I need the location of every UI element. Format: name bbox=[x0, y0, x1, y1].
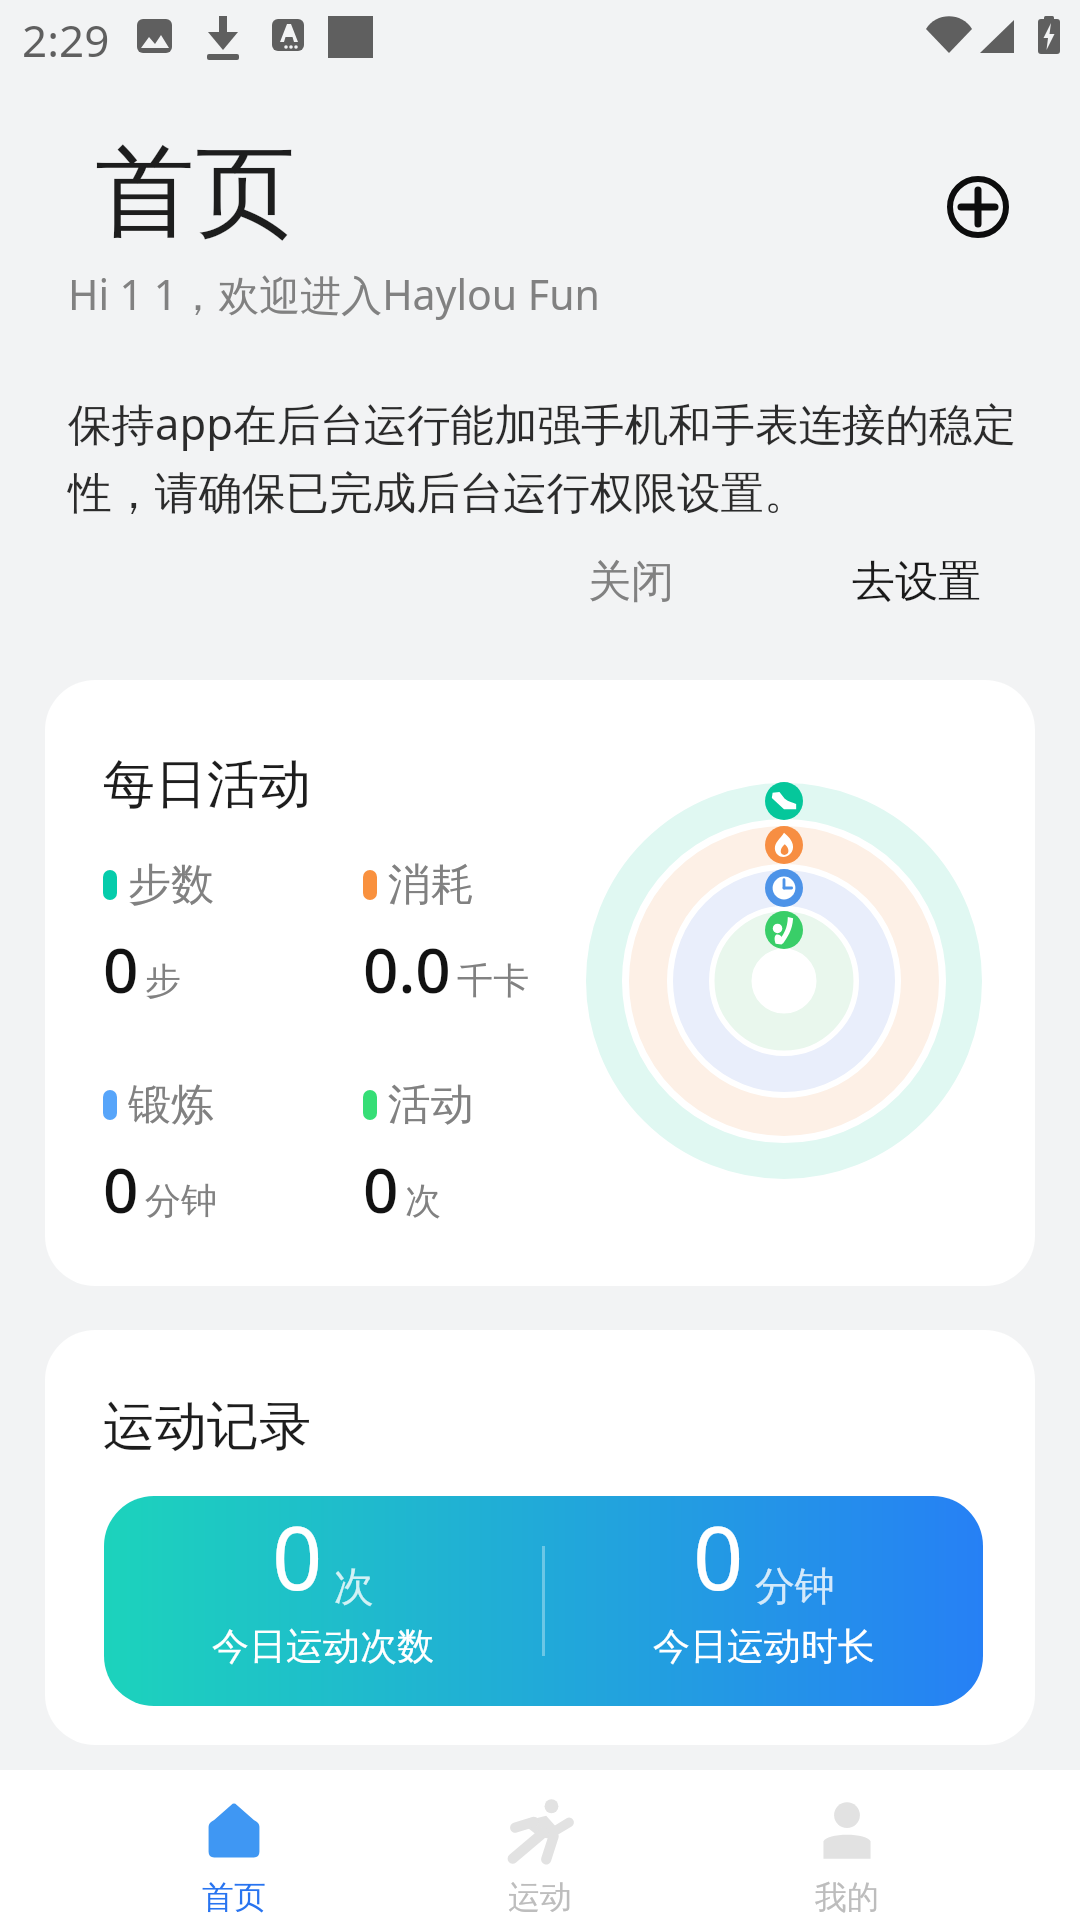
button[interactable]: Add device bbox=[940, 169, 1016, 245]
staticText: 我的 bbox=[815, 1877, 879, 1917]
staticText: 首页 bbox=[95, 130, 295, 256]
staticText: 运动记录 bbox=[103, 1394, 311, 1460]
staticText: 运动 bbox=[508, 1877, 572, 1917]
button[interactable]: 去设置 bbox=[838, 545, 995, 619]
staticText: 0.0 bbox=[363, 927, 451, 1011]
staticText: 活动 bbox=[388, 1078, 474, 1132]
staticText: 首页 bbox=[202, 1877, 266, 1917]
staticText: 分钟 bbox=[145, 1178, 217, 1223]
staticText: 次 bbox=[334, 1561, 374, 1611]
staticText: 0 bbox=[103, 1147, 139, 1231]
staticText: 去设置 bbox=[852, 555, 981, 609]
button[interactable]: 运动 bbox=[450, 1770, 630, 1920]
staticText: 0 bbox=[103, 927, 139, 1011]
staticText: 0 bbox=[363, 1147, 399, 1231]
staticText: 0 bbox=[272, 1496, 323, 1616]
staticText: 每日活动 bbox=[103, 752, 311, 818]
staticText: 步数 bbox=[128, 858, 214, 912]
staticText: 关闭 bbox=[588, 555, 674, 609]
staticText: 今日运动时长 bbox=[653, 1623, 875, 1670]
button[interactable]: 我的 bbox=[757, 1770, 937, 1920]
staticText: 步 bbox=[145, 958, 181, 1003]
staticText: 消耗 bbox=[388, 858, 474, 912]
staticText: 2:29 bbox=[22, 10, 110, 70]
staticText: 保持app在后台运行能加强手机和手表连接的稳定性，请确保已完成后台运行权限设置。 bbox=[68, 393, 1018, 521]
button[interactable]: 每日活动 bbox=[45, 680, 1035, 1286]
staticText: 分钟 bbox=[755, 1561, 835, 1611]
staticText: 次 bbox=[405, 1178, 441, 1223]
staticText: Hi 1 1，欢迎进入Haylou Fun bbox=[68, 266, 600, 322]
button[interactable]: 关闭 bbox=[574, 545, 688, 619]
staticText: 今日运动次数 bbox=[212, 1623, 434, 1670]
staticText: 锻炼 bbox=[128, 1078, 214, 1132]
button[interactable]: 运动记录 bbox=[45, 1330, 1035, 1745]
button[interactable]: 0 bbox=[104, 1496, 983, 1706]
button[interactable]: 首页 bbox=[144, 1770, 324, 1920]
staticText: 0 bbox=[693, 1496, 744, 1616]
staticText: 千卡 bbox=[457, 958, 529, 1003]
